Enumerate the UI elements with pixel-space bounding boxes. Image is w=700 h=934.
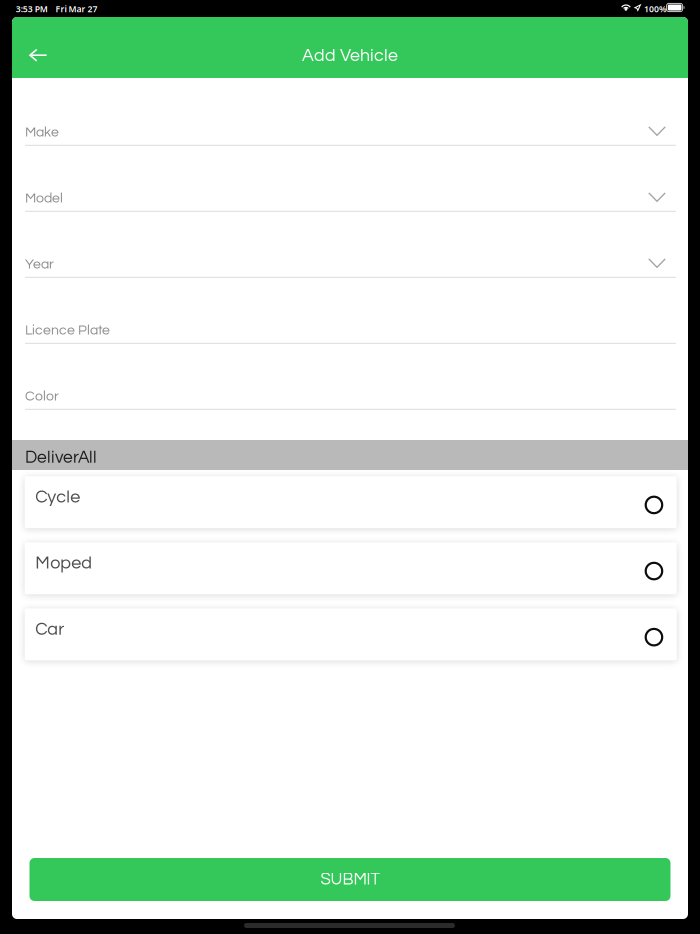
- staticText: 3:53 PM: [16, 3, 48, 15]
- button[interactable]: Moped: [25, 542, 677, 594]
- staticText: Car: [35, 620, 64, 638]
- staticText: Year: [25, 257, 54, 271]
- staticText: Cycle: [35, 488, 80, 506]
- staticText: 100%: [644, 3, 667, 15]
- staticText: DeliverAll: [25, 448, 97, 466]
- staticText: SUBMIT: [320, 871, 379, 888]
- staticText: Model: [25, 191, 63, 205]
- staticText: Add Vehicle: [302, 46, 398, 65]
- button[interactable]: Car: [25, 608, 677, 660]
- staticText: Fri Mar 27: [55, 3, 97, 15]
- button[interactable]: SUBMIT: [29, 858, 670, 901]
- button[interactable]: Back: [15, 35, 61, 75]
- staticText: Make: [25, 125, 59, 139]
- staticText: Color: [25, 389, 59, 403]
- staticText: Licence Plate: [25, 323, 110, 337]
- staticText: Moped: [35, 554, 92, 572]
- button[interactable]: Cycle: [25, 476, 677, 528]
